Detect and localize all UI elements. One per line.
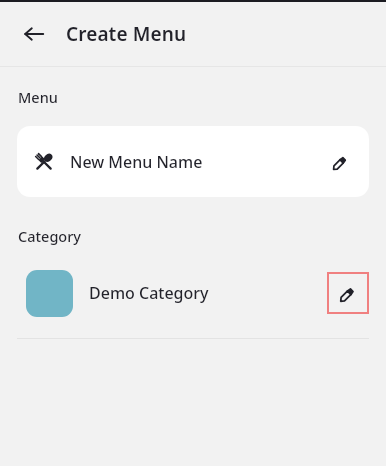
button[interactable]: Edit category [327, 272, 369, 314]
button[interactable]: Edit menu name [319, 140, 363, 184]
staticText: Demo Category [89, 282, 327, 304]
staticText: Category [18, 226, 82, 246]
staticText: New Menu Name [70, 151, 319, 173]
staticText: Create Menu [66, 21, 187, 47]
staticText: Menu [18, 87, 58, 107]
button[interactable]: Demo Category [0, 262, 386, 324]
button[interactable]: Back [14, 14, 54, 54]
button[interactable]: New Menu Name [17, 126, 369, 197]
